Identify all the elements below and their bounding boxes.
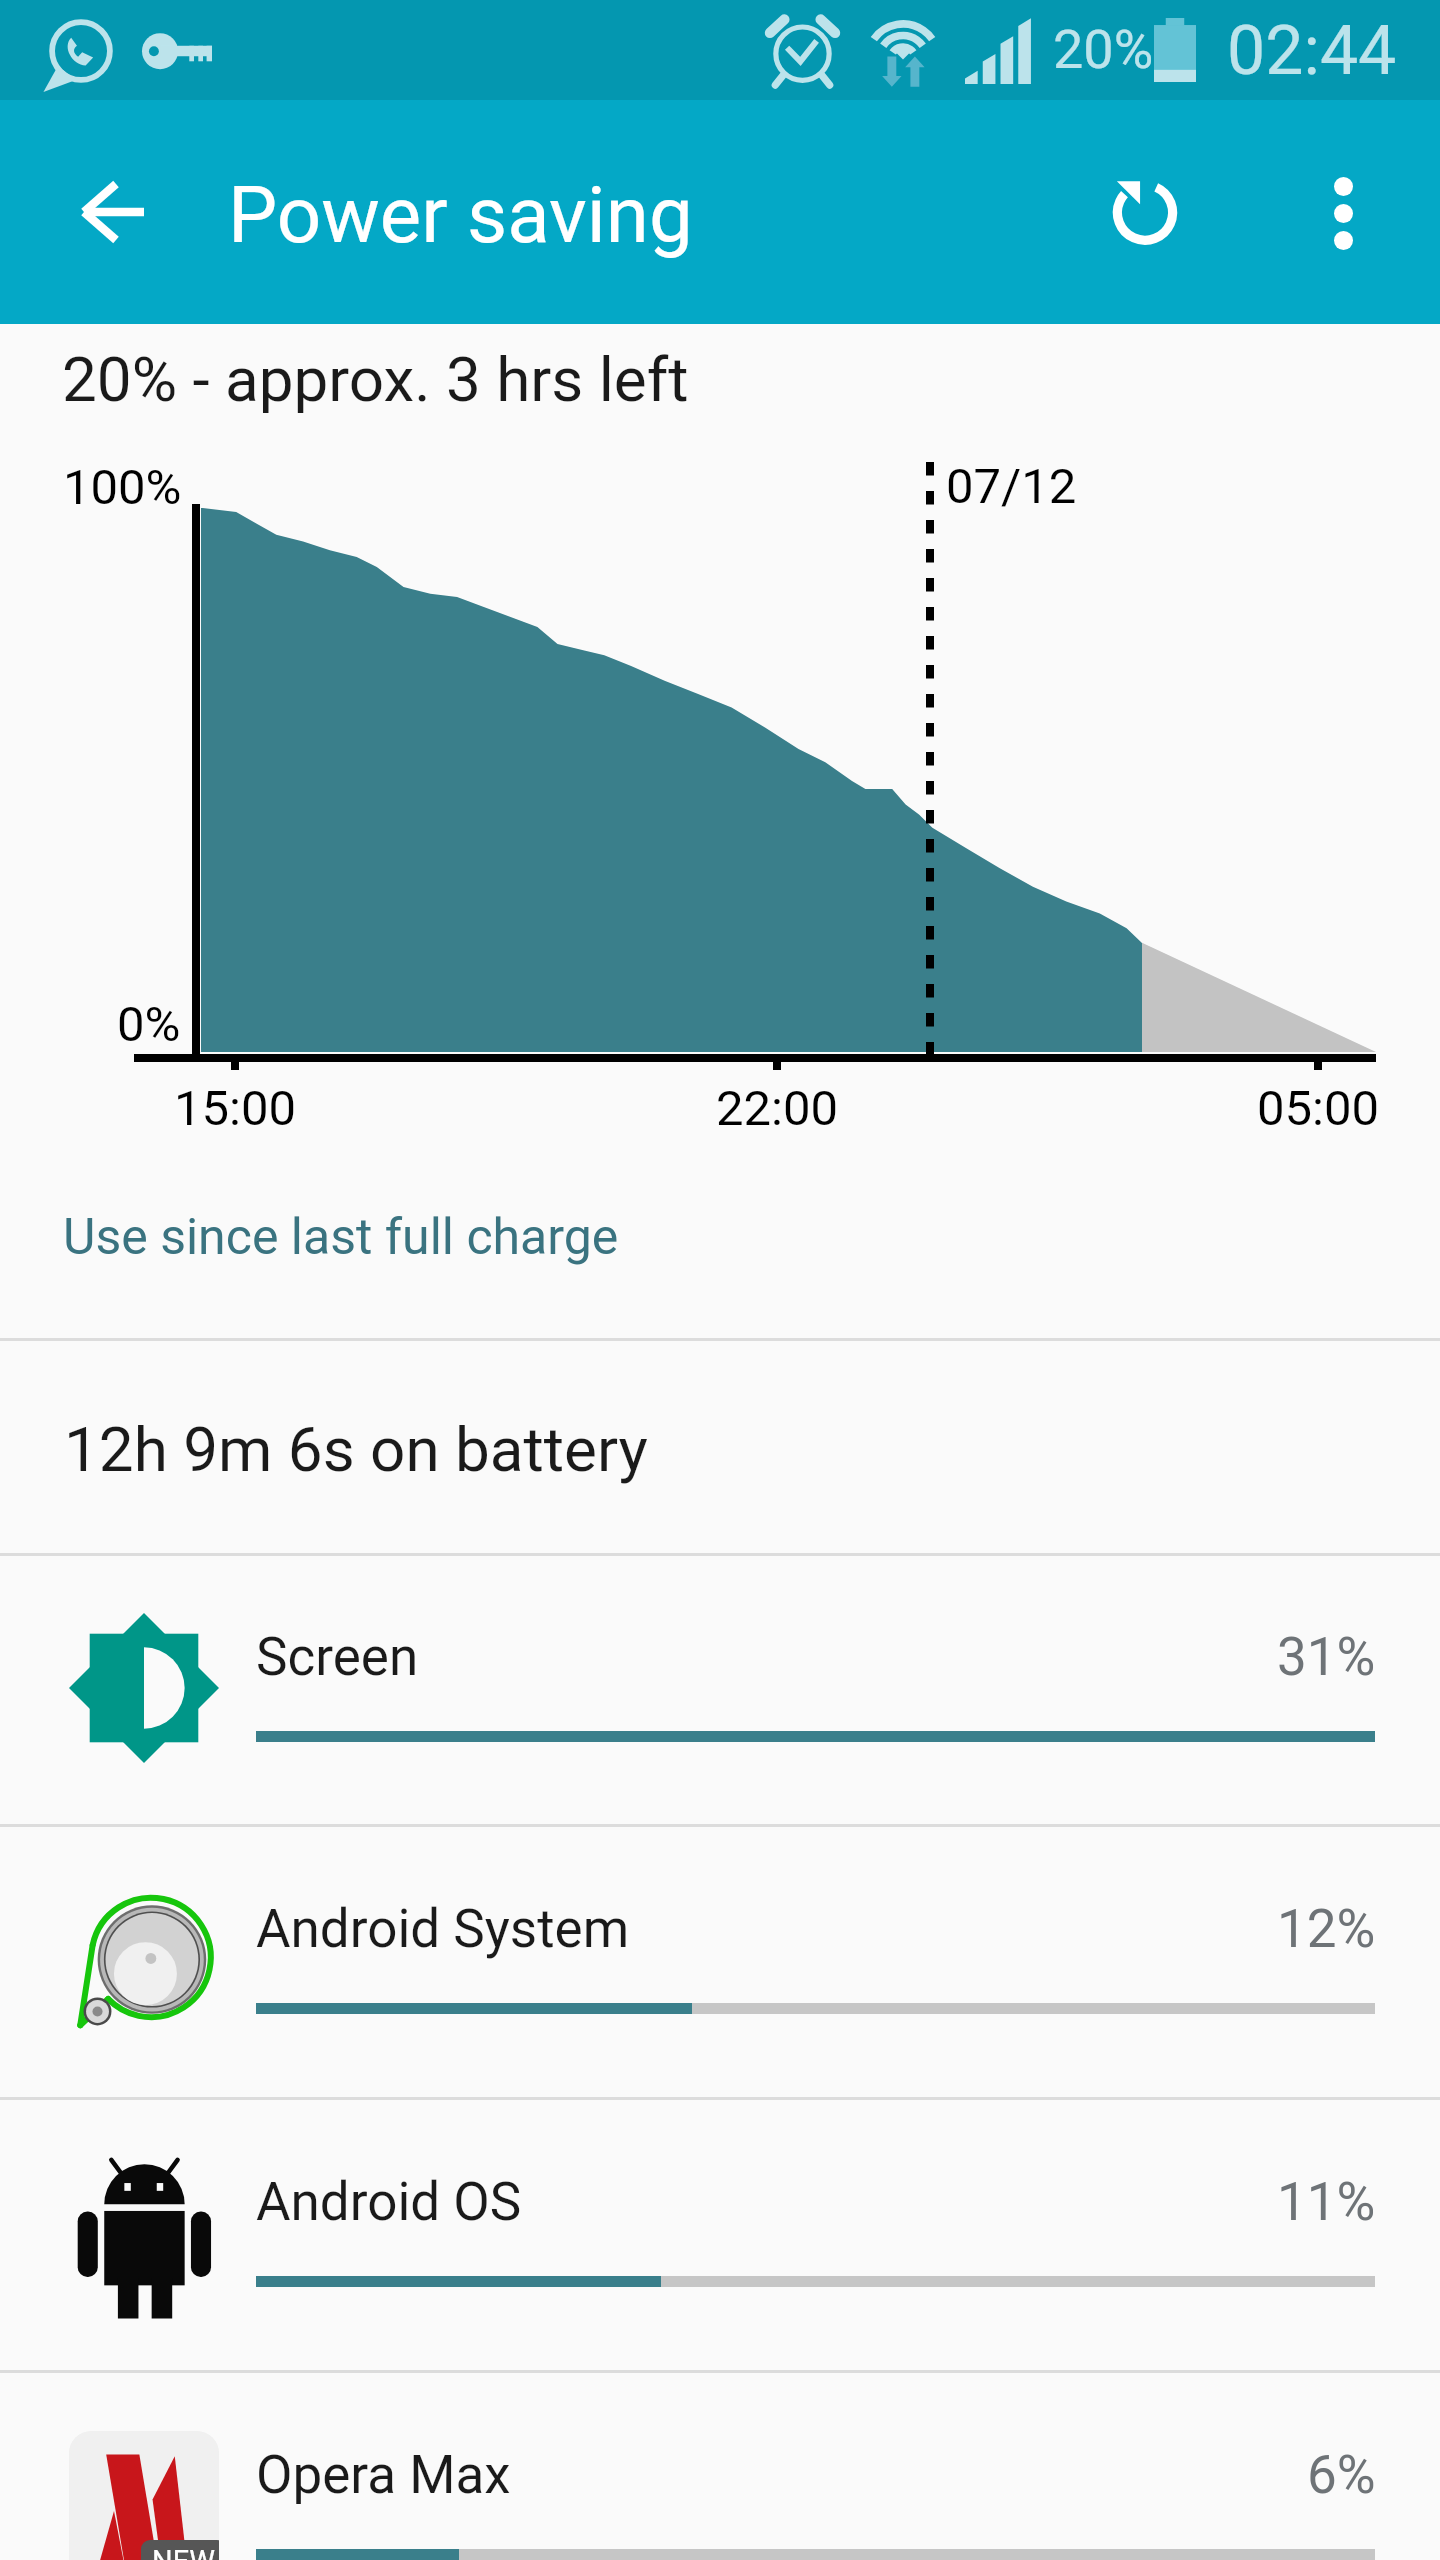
staticText: Android System [256, 1898, 630, 1960]
staticText: 07/12 [946, 458, 1077, 515]
staticText: 20% - approx. 3 hrs left [62, 343, 689, 416]
staticText: Power saving [228, 170, 693, 261]
staticText: 31% [1277, 1626, 1376, 1688]
button[interactable]: Refresh [1081, 145, 1209, 273]
staticText: 0% [117, 996, 181, 1053]
staticText: 12h 9m 6s on battery [64, 1413, 648, 1486]
staticText: Screen [256, 1626, 419, 1688]
button[interactable]: Navigate up [32, 150, 192, 274]
staticText: Use since last full charge [63, 1208, 619, 1267]
staticText: Android OS [256, 2171, 522, 2233]
button[interactable]: More options [1279, 149, 1407, 277]
staticText: 02:44 [1227, 11, 1397, 91]
staticText: 6% [1307, 2444, 1376, 2506]
staticText: 22:00 [716, 1080, 839, 1137]
staticText: 11% [1277, 2171, 1376, 2233]
button[interactable]: Android System [0, 1824, 1440, 2097]
staticText: 12% [1277, 1898, 1376, 1960]
staticText: 15:00 [174, 1080, 297, 1137]
button[interactable]: NEW [0, 2370, 1440, 2560]
button[interactable]: Screen [0, 1553, 1440, 1824]
staticText: NEW [152, 2544, 215, 2560]
staticText: Opera Max [256, 2444, 511, 2506]
button[interactable]: Android OS [0, 2097, 1440, 2370]
staticText: 20% [1053, 18, 1154, 81]
staticText: 100% [63, 459, 182, 516]
staticText: 05:00 [1257, 1080, 1380, 1137]
